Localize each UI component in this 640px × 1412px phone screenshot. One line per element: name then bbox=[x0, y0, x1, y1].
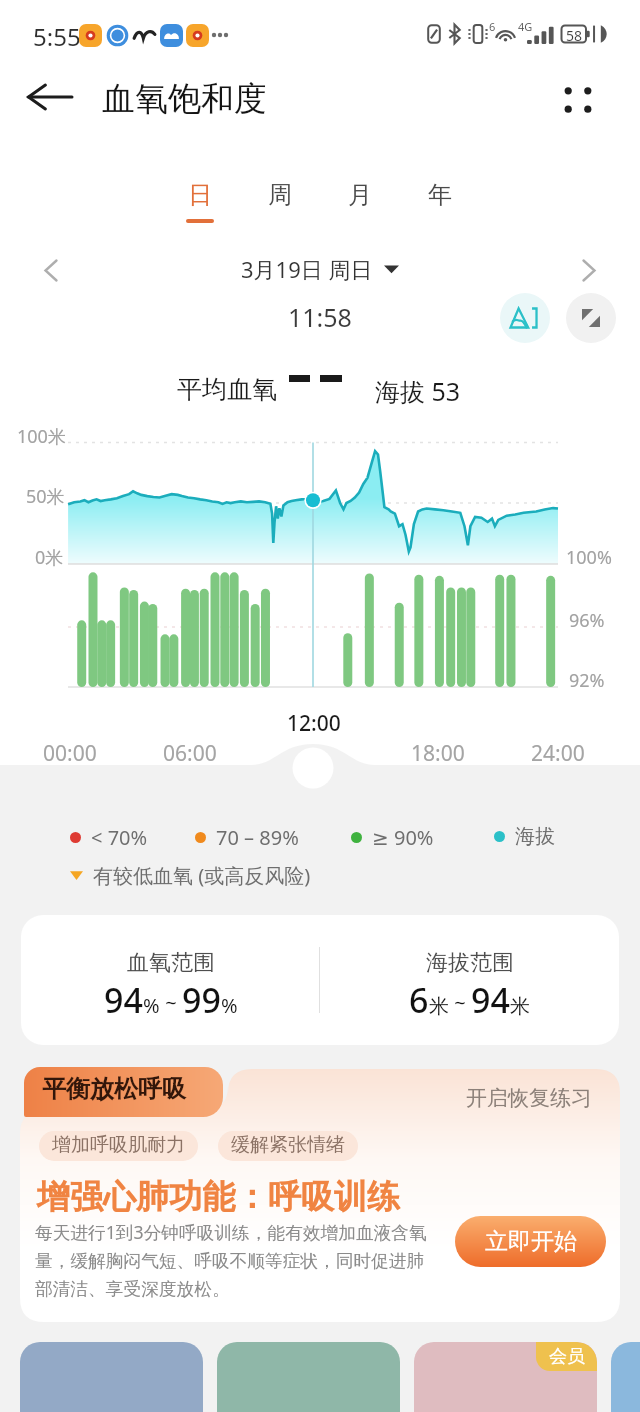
button[interactable]: 有较低血氧 (或高反风险) bbox=[70, 862, 311, 889]
button[interactable]: 缓解紧张情绪 bbox=[218, 1131, 358, 1161]
staticText: 年 bbox=[428, 180, 452, 210]
staticText: 92% bbox=[569, 668, 605, 693]
staticText: 周 bbox=[268, 180, 292, 210]
button[interactable]: Next day bbox=[565, 246, 613, 294]
staticText: ~ bbox=[160, 989, 182, 1016]
staticText: 血氧饱和度 bbox=[102, 78, 267, 120]
staticText: 日 bbox=[188, 180, 212, 210]
staticText: 海拔 bbox=[515, 824, 555, 849]
staticText: 58 bbox=[566, 26, 583, 45]
button[interactable]: 70 – 89% bbox=[195, 824, 299, 851]
staticText: 94 bbox=[104, 977, 143, 1023]
staticText: % bbox=[221, 992, 238, 1019]
staticText: 海拔 53 bbox=[375, 374, 461, 408]
staticText: 12:00 bbox=[287, 709, 341, 738]
staticText: 100米 bbox=[17, 424, 66, 449]
button[interactable]: 增加呼吸肌耐力 bbox=[20, 1110, 620, 1322]
button[interactable]: 日 bbox=[160, 180, 240, 250]
staticText: 会员 bbox=[549, 1345, 585, 1368]
button[interactable]: < 70% bbox=[70, 824, 148, 851]
staticText: 月 bbox=[348, 180, 372, 210]
staticText: 100% bbox=[566, 545, 612, 570]
staticText: 50米 bbox=[26, 484, 65, 509]
staticText: 平均血氧 bbox=[177, 374, 277, 405]
button[interactable]: 海拔 bbox=[494, 824, 555, 849]
staticText: 94 bbox=[471, 977, 510, 1023]
button[interactable]: 月 bbox=[320, 180, 400, 250]
staticText: 缓解紧张情绪 bbox=[231, 1133, 345, 1157]
button[interactable]: More options bbox=[552, 74, 604, 126]
staticText: 米 bbox=[510, 994, 530, 1019]
staticText: 6 bbox=[489, 19, 496, 34]
staticText: ~ bbox=[449, 989, 471, 1016]
staticText: 有较低血氧 (或高反风险) bbox=[93, 862, 311, 889]
staticText: ≥ 90% bbox=[372, 824, 434, 851]
staticText: 96% bbox=[569, 608, 605, 633]
staticText: 4G bbox=[518, 19, 533, 34]
staticText: 6 bbox=[409, 977, 429, 1023]
staticText: 米 bbox=[429, 994, 449, 1019]
button[interactable] bbox=[611, 1342, 640, 1412]
button[interactable]: 增加呼吸肌耐力 bbox=[39, 1131, 198, 1161]
staticText: 开启恢复练习 bbox=[466, 1085, 592, 1111]
staticText: 0米 bbox=[35, 545, 64, 570]
staticText: 海拔范围 bbox=[426, 949, 514, 977]
button[interactable]: Previous day bbox=[27, 246, 75, 294]
staticText: 70 – 89% bbox=[216, 824, 299, 851]
button[interactable]: 立即开始 bbox=[455, 1216, 606, 1267]
button[interactable]: 年 bbox=[400, 180, 480, 250]
staticText: 18:00 bbox=[411, 739, 465, 768]
button[interactable]: ≥ 90% bbox=[351, 824, 434, 851]
button[interactable]: Full screen bbox=[566, 293, 616, 343]
button[interactable] bbox=[217, 1342, 400, 1412]
button[interactable]: 周 bbox=[240, 180, 320, 250]
staticText: 每天进行1到3分钟呼吸训练，能有效增加血液含氧 量，缓解胸闷气短、呼吸不顺等症状… bbox=[35, 1220, 465, 1300]
staticText: 3月19日 周日 bbox=[241, 254, 373, 284]
button[interactable]: 血氧范围 bbox=[21, 915, 619, 1045]
button[interactable] bbox=[20, 1342, 203, 1412]
staticText: 增加呼吸肌耐力 bbox=[52, 1133, 185, 1157]
staticText: 99 bbox=[182, 977, 221, 1023]
staticText: 立即开始 bbox=[485, 1227, 577, 1256]
staticText: 06:00 bbox=[163, 739, 217, 768]
button[interactable]: 开启恢复练习 bbox=[466, 1085, 592, 1111]
staticText: % bbox=[143, 992, 160, 1019]
staticText: 11:58 bbox=[288, 300, 352, 334]
staticText: < 70% bbox=[91, 824, 148, 851]
staticText: 血氧范围 bbox=[127, 949, 215, 977]
staticText: 平衡放松呼吸 bbox=[42, 1074, 186, 1104]
staticText: 增强心肺功能：呼吸训练 bbox=[37, 1176, 400, 1218]
staticText: 5:55 bbox=[33, 20, 81, 53]
button[interactable]: Back bbox=[24, 71, 76, 123]
staticText: 24:00 bbox=[531, 739, 585, 768]
button[interactable]: AI analysis bbox=[500, 293, 550, 343]
staticText: 00:00 bbox=[43, 739, 97, 768]
button[interactable]: 会员 bbox=[414, 1342, 597, 1412]
